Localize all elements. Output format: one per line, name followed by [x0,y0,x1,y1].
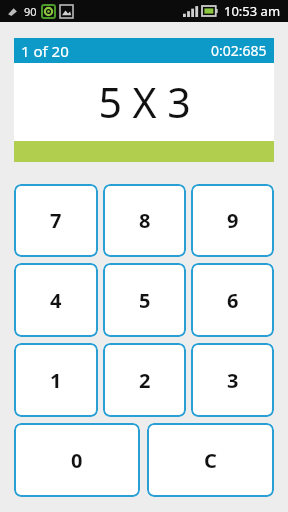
staticText: 5 [139,287,151,314]
staticText: 90 [24,4,37,19]
staticText: 10:53 am [224,2,281,20]
staticText: C [204,447,217,474]
button[interactable]: 4 [14,263,98,337]
staticText: 9 [227,207,239,234]
button[interactable]: 0 [14,423,140,497]
button[interactable]: 3 [191,343,274,417]
button[interactable]: 9 [191,184,274,257]
button[interactable]: 6 [191,263,274,337]
button[interactable]: 2 [103,343,186,417]
button[interactable]: 5 [103,263,186,337]
button[interactable]: C [147,423,274,497]
button[interactable]: 7 [14,184,98,257]
staticText: 7 [50,207,62,234]
staticText: 4 [50,287,62,314]
staticText: 8 [139,207,151,234]
button[interactable]: 1 [14,343,98,417]
staticText: 5 X 3 [98,74,191,130]
button[interactable]: 8 [103,184,186,257]
staticText: 1 of 20 [21,41,69,61]
staticText: 6 [227,287,239,314]
staticText: 1 [50,367,62,394]
staticText: 0:02:685 [211,41,267,60]
staticText: 2 [139,367,151,394]
staticText: 3 [227,367,239,394]
staticText: 0 [71,447,83,474]
